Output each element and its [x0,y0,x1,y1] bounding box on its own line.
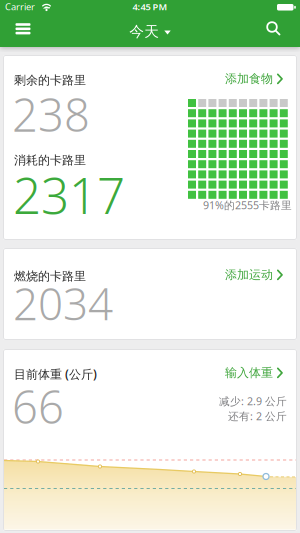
staticText: 燃烧的卡路里 [14,269,86,284]
button[interactable]: 添加食物 [133,71,283,86]
staticText: 2034 [13,274,113,332]
button[interactable] [0,0,46,47]
staticText: 添加运动 [225,267,273,282]
staticText: 今天 [129,22,159,40]
staticText: 输入体重 [225,365,273,380]
staticText: 2317 [13,162,125,227]
staticText: 消耗的卡路里 [14,153,86,168]
button[interactable] [0,0,300,47]
staticText: 4:45 PM [132,0,167,13]
button[interactable]: 今天 [0,22,300,40]
staticText: 还有: 2 公斤 [228,409,287,423]
staticText: 目前体重 (公斤) [14,366,97,382]
staticText: 剩余的卡路里 [14,73,86,88]
button[interactable]: 添加运动 [133,267,283,282]
staticText: 238 [12,84,90,144]
staticText: Carrier [5,0,35,13]
staticText: 91%的2555卡路里 [203,198,292,212]
staticText: 66 [12,376,64,436]
staticText: 减少: 2.9 公斤 [219,394,287,408]
staticText: 添加食物 [225,71,273,86]
button[interactable]: 输入体重 [133,365,283,380]
